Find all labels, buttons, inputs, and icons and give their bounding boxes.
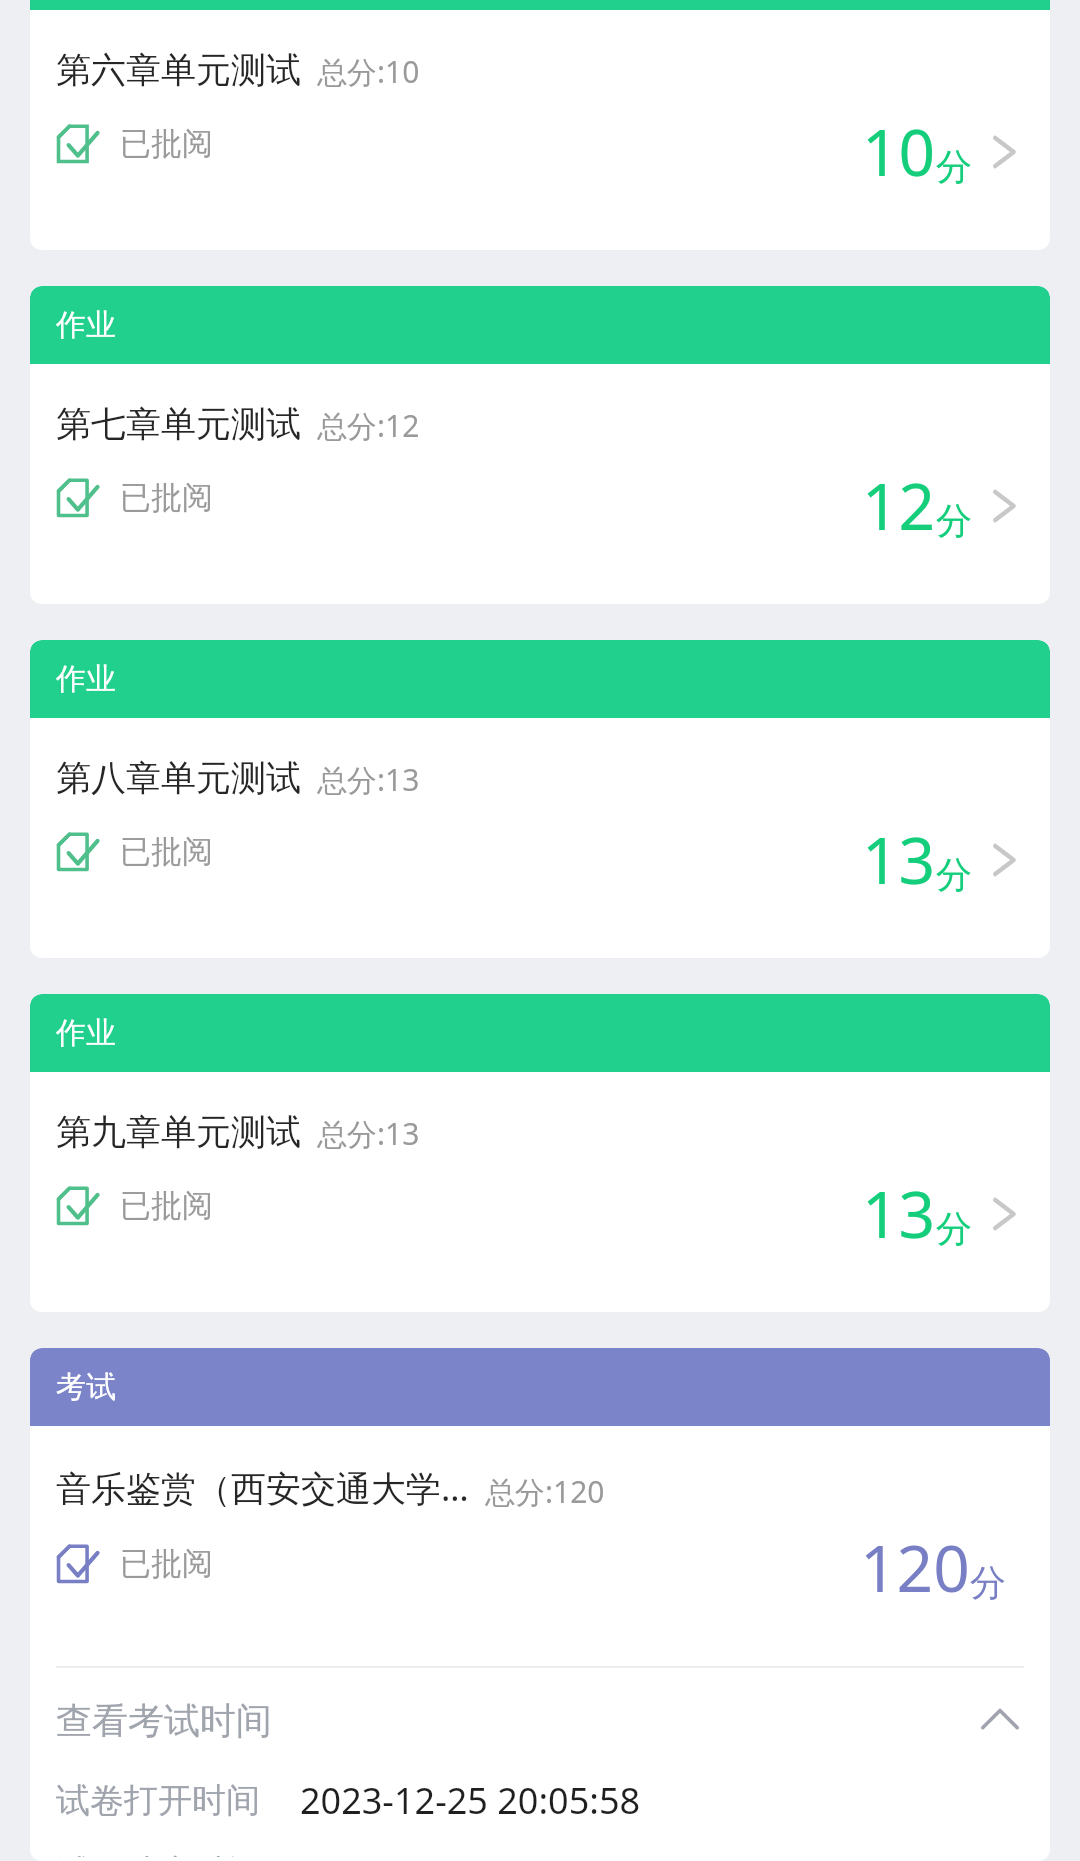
- button[interactable]: 第六章单元测试: [30, 10, 1050, 250]
- staticText: 第七章单元测试: [56, 402, 301, 446]
- staticText: 分: [970, 1560, 1006, 1605]
- staticText: 已批阅: [120, 1186, 213, 1225]
- button[interactable]: 作业: [30, 286, 1050, 364]
- staticText: 考试: [56, 1368, 116, 1406]
- button[interactable]: 作业: [30, 994, 1050, 1072]
- staticText: 音乐鉴赏（西安交通大学…: [56, 1464, 469, 1512]
- staticText: 2023-12-25 20:05:58: [300, 1776, 641, 1825]
- other: 查看详情: [982, 130, 1026, 174]
- other: 收起考试时间: [976, 1696, 1024, 1744]
- staticText: 分: [936, 1206, 972, 1251]
- staticText: 总分:13: [317, 759, 420, 800]
- staticText: 试卷打开时间: [56, 1779, 260, 1822]
- staticText: 已批阅: [120, 478, 213, 517]
- other: 查看详情: [982, 1192, 1026, 1236]
- staticText: 已批阅: [120, 124, 213, 163]
- staticText: 分: [936, 852, 972, 897]
- staticText: 分: [936, 144, 972, 189]
- staticText: 总分:12: [317, 405, 420, 446]
- staticText: 总分:120: [485, 1471, 605, 1512]
- staticText: 总分:13: [317, 1113, 420, 1154]
- staticText: 作业: [56, 660, 116, 698]
- staticText: 作业: [56, 306, 116, 344]
- staticText: 10: [862, 108, 936, 195]
- staticText: 第九章单元测试: [56, 1110, 301, 1154]
- button[interactable]: 考试: [30, 1348, 1050, 1426]
- staticText: 12: [862, 462, 936, 549]
- staticText: 作业: [56, 1014, 116, 1052]
- staticText: 已批阅: [120, 832, 213, 871]
- staticText: 13: [862, 816, 936, 903]
- button[interactable]: 第七章单元测试: [30, 364, 1050, 604]
- staticText: 分: [936, 498, 972, 543]
- staticText: 120: [860, 1524, 970, 1611]
- staticText: 总分:10: [317, 51, 420, 92]
- staticText: 13: [862, 1170, 936, 1257]
- button[interactable]: 音乐鉴赏（西安交通大学…: [30, 1426, 1050, 1666]
- button[interactable]: 作业: [30, 640, 1050, 718]
- button[interactable]: 第八章单元测试: [30, 718, 1050, 958]
- button[interactable]: 第九章单元测试: [30, 1072, 1050, 1312]
- staticText: 已批阅: [120, 1544, 213, 1583]
- staticText: 第八章单元测试: [56, 756, 301, 800]
- staticText: 查看考试时间: [56, 1698, 272, 1743]
- button[interactable]: 查看考试时间: [56, 1696, 1024, 1744]
- other: 查看详情: [982, 484, 1026, 528]
- other: 查看详情: [982, 838, 1026, 882]
- staticText: 第六章单元测试: [56, 48, 301, 92]
- staticText: 试卷结束时间: [56, 1851, 260, 1857]
